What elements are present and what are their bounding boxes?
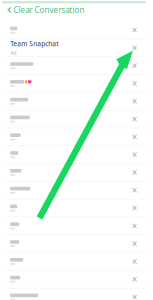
button[interactable]: Clear conversation xyxy=(133,93,153,110)
button[interactable]: Clear conversation xyxy=(133,39,153,56)
button[interactable]: Clear conversation xyxy=(133,110,153,128)
button[interactable]: Clear conversation xyxy=(133,164,153,181)
button[interactable]: Clear conversation xyxy=(133,57,153,74)
button[interactable]: Clear conversation xyxy=(133,182,153,199)
button[interactable]: Clear conversation xyxy=(133,271,153,288)
staticText: 4d xyxy=(10,49,16,57)
button[interactable]: Clear conversation xyxy=(133,217,153,234)
staticText: Clear Conversation xyxy=(14,5,85,15)
staticText: Team Snapchat xyxy=(10,39,58,48)
button[interactable]: Clear conversation xyxy=(133,128,153,145)
button[interactable]: Clear conversation xyxy=(133,199,153,217)
button[interactable]: Clear conversation xyxy=(133,146,153,163)
button[interactable]: Clear conversation xyxy=(133,21,153,39)
button[interactable]: Clear conversation xyxy=(133,288,153,300)
button[interactable]: Clear conversation xyxy=(133,235,153,252)
button[interactable]: Clear conversation xyxy=(133,253,153,270)
button[interactable]: Clear Conversation xyxy=(0,5,85,21)
button[interactable]: Clear conversation xyxy=(133,75,153,92)
